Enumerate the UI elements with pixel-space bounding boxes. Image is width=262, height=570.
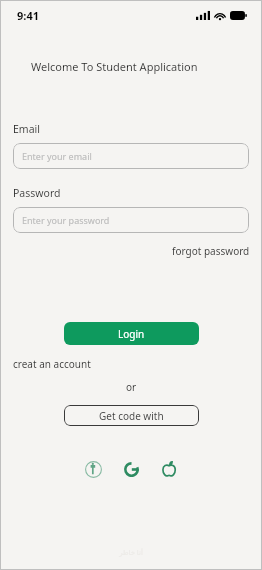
staticText: أنا خاطر <box>119 548 143 558</box>
staticText: Get code with <box>99 409 164 423</box>
staticText: Password <box>13 186 61 200</box>
button[interactable]: creat an account <box>11 356 93 372</box>
button[interactable]: Sign in with Google <box>119 457 143 481</box>
button[interactable]: Get code with <box>64 405 199 426</box>
button[interactable]: Enter your password <box>13 207 249 233</box>
button[interactable]: forgot password <box>172 242 262 260</box>
staticText: Login <box>118 327 145 341</box>
button[interactable]: Sign in with Facebook <box>81 457 105 481</box>
staticText: or <box>126 380 137 394</box>
button[interactable]: Enter your email <box>13 143 249 169</box>
staticText: Enter your email <box>22 150 92 162</box>
staticText: Enter your password <box>22 214 110 226</box>
button[interactable]: Login <box>64 322 199 345</box>
staticText: Email <box>13 122 40 136</box>
button[interactable]: Sign in with Apple <box>157 457 181 481</box>
staticText: 9:41 <box>17 8 39 23</box>
staticText: Welcome To Student Application <box>31 59 198 74</box>
